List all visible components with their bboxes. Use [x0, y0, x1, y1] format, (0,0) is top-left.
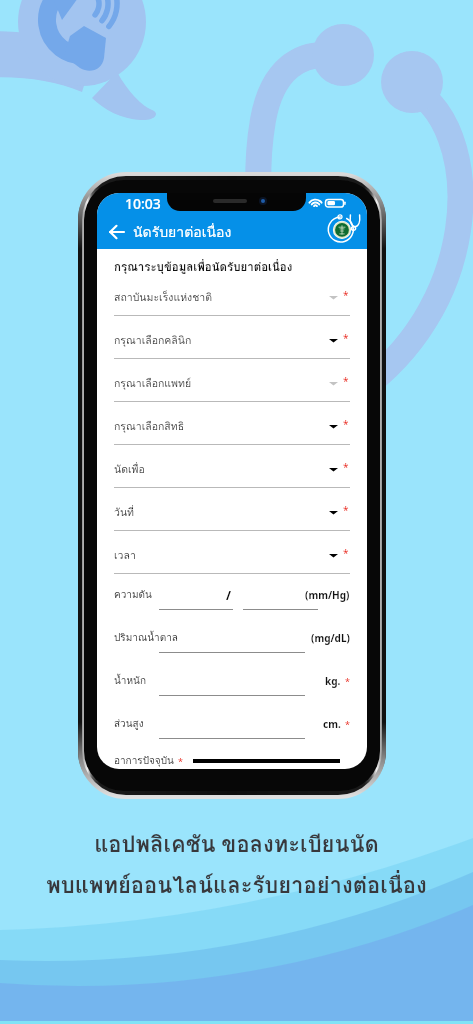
button[interactable]: สถาบันมะเร็งแห่งชาติ: [114, 279, 350, 322]
button[interactable]: กรุณาเลือกคลินิก: [114, 322, 350, 365]
staticText: *: [343, 374, 349, 388]
staticText: ปริมาณน้ำตาล: [114, 630, 178, 646]
button[interactable]: Back: [104, 219, 130, 245]
staticText: kg.: [325, 674, 341, 688]
staticText: *: [343, 331, 349, 345]
button[interactable]: วันที่: [114, 494, 350, 537]
button[interactable]: App logo: [322, 210, 364, 250]
staticText: (mg/dL): [311, 631, 350, 645]
staticText: /: [226, 587, 231, 603]
staticText: *: [343, 546, 349, 560]
staticText: สถาบันมะเร็งแห่งชาติ: [114, 289, 213, 306]
staticText: *: [345, 718, 350, 730]
staticText: ความดัน: [114, 587, 152, 603]
staticText: (mm/Hg): [305, 588, 350, 602]
staticText: *: [345, 675, 350, 687]
staticText: กรุณาเลือกสิทธิ: [114, 418, 185, 435]
staticText: พบแพทย์ออนไลน์และรับยาอย่างต่อเนื่อง: [46, 868, 427, 903]
staticText: 10:03: [125, 194, 161, 213]
staticText: เวลา: [114, 547, 136, 564]
staticText: แอปพลิเคชัน ขอลงทะเบียนนัด: [94, 827, 379, 862]
staticText: กรุณาระบุข้อมูลเพื่อนัดรับยาต่อเนื่อง: [114, 258, 293, 276]
staticText: วันที่: [114, 504, 134, 521]
staticText: cm.: [323, 717, 341, 731]
staticText: น้ำหนัก: [114, 673, 146, 689]
staticText: *: [343, 503, 349, 517]
staticText: *: [343, 460, 349, 474]
button[interactable]: กรุณาเลือกสิทธิ: [114, 408, 350, 451]
button[interactable]: นัดเพื่อ: [114, 451, 350, 494]
button[interactable]: เวลา: [114, 537, 350, 580]
staticText: *: [343, 288, 349, 302]
staticText: *: [178, 755, 183, 767]
staticText: นัดเพื่อ: [114, 461, 145, 478]
staticText: *: [343, 417, 349, 431]
staticText: อาการปัจจุบัน: [114, 753, 174, 769]
staticText: ส่วนสูง: [114, 716, 144, 732]
staticText: นัดรับยาต่อเนื่อง: [133, 221, 232, 243]
button[interactable]: กรุณาเลือกแพทย์: [114, 365, 350, 408]
staticText: กรุณาเลือกคลินิก: [114, 332, 192, 349]
staticText: กรุณาเลือกแพทย์: [114, 375, 192, 392]
